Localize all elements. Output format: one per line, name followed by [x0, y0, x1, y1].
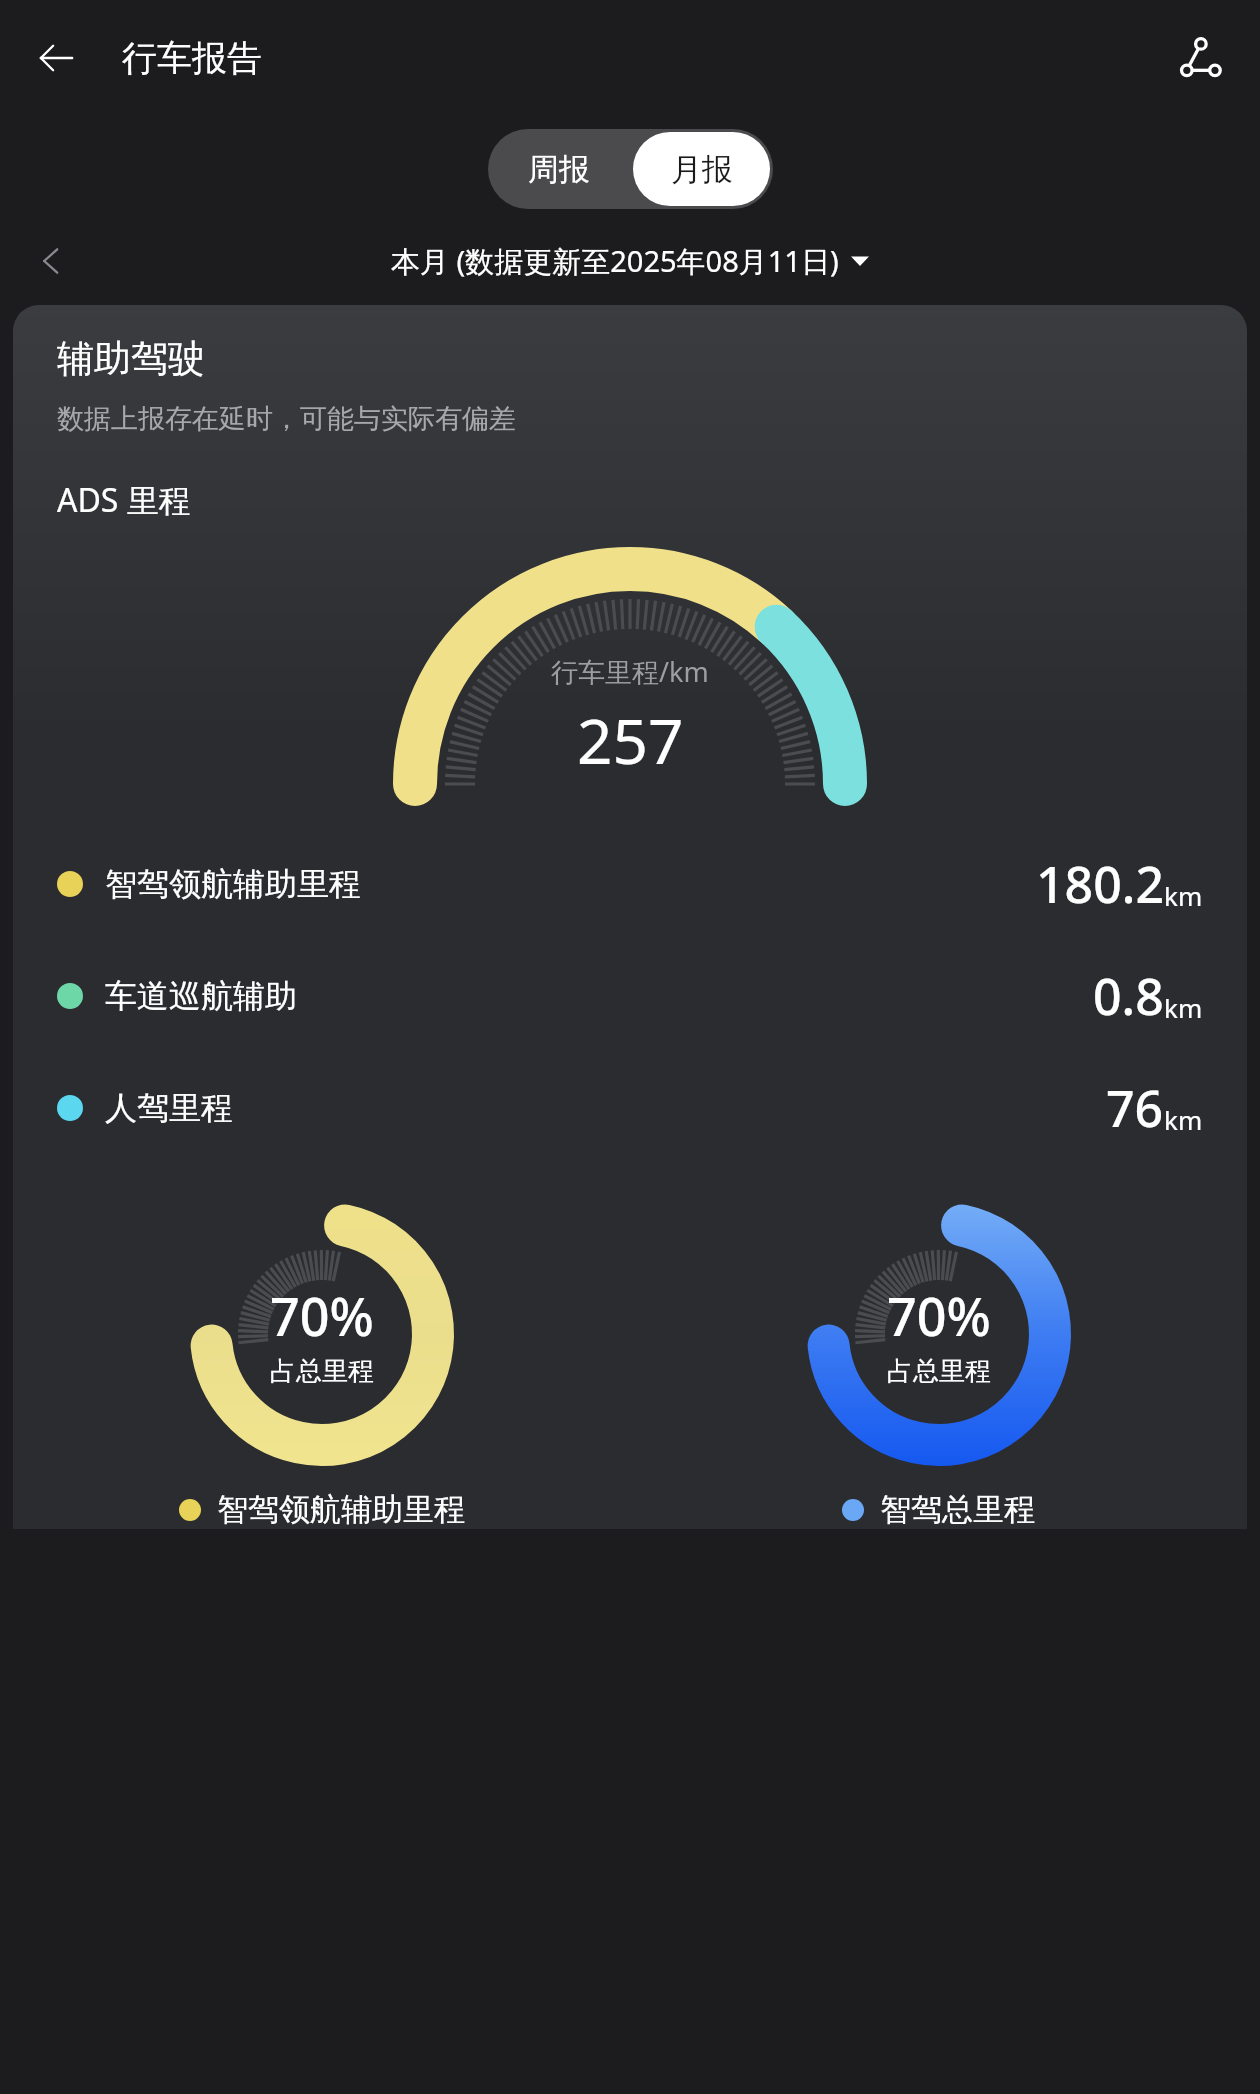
staticText: 车道巡航辅助: [105, 976, 297, 1016]
staticText: 180.2: [1036, 850, 1164, 918]
button[interactable]: 周报: [488, 129, 630, 209]
staticText: km: [1164, 990, 1203, 1025]
staticText: km: [1164, 878, 1203, 913]
staticText: 辅助驾驶: [57, 335, 205, 382]
button[interactable]: 月报: [633, 132, 770, 206]
button[interactable]: Back: [30, 32, 82, 84]
staticText: 占总里程: [887, 1355, 991, 1388]
button[interactable]: Previous: [28, 237, 76, 285]
staticText: 智驾领航辅助里程: [105, 864, 361, 904]
staticText: 周报: [528, 150, 590, 189]
staticText: 行车里程/km: [551, 653, 709, 690]
staticText: 月报: [671, 150, 733, 189]
staticText: 智驾领航辅助里程: [217, 1490, 465, 1529]
staticText: 本月 (数据更新至2025年08月11日): [391, 241, 839, 281]
button[interactable]: 人驾里程: [13, 1052, 1247, 1164]
staticText: 智驾总里程: [880, 1490, 1035, 1529]
staticText: 占总里程: [270, 1355, 374, 1388]
staticText: 70%: [270, 1280, 374, 1351]
button[interactable]: 70%: [13, 1194, 630, 1529]
staticText: 70%: [887, 1280, 991, 1351]
button[interactable]: Share: [1168, 26, 1232, 90]
staticText: 76: [1106, 1074, 1164, 1142]
staticText: 人驾里程: [105, 1088, 233, 1128]
staticText: 257: [577, 698, 684, 782]
button[interactable]: 智驾领航辅助里程: [13, 828, 1247, 940]
button[interactable]: 70%: [630, 1194, 1247, 1529]
staticText: 行车报告: [122, 36, 262, 80]
button[interactable]: 本月 (数据更新至2025年08月11日): [391, 241, 869, 281]
staticText: 数据上报存在延时，可能与实际有偏差: [57, 402, 516, 436]
staticText: km: [1164, 1102, 1203, 1137]
staticText: ADS 里程: [57, 478, 191, 522]
staticText: 0.8: [1093, 962, 1164, 1030]
button[interactable]: 车道巡航辅助: [13, 940, 1247, 1052]
